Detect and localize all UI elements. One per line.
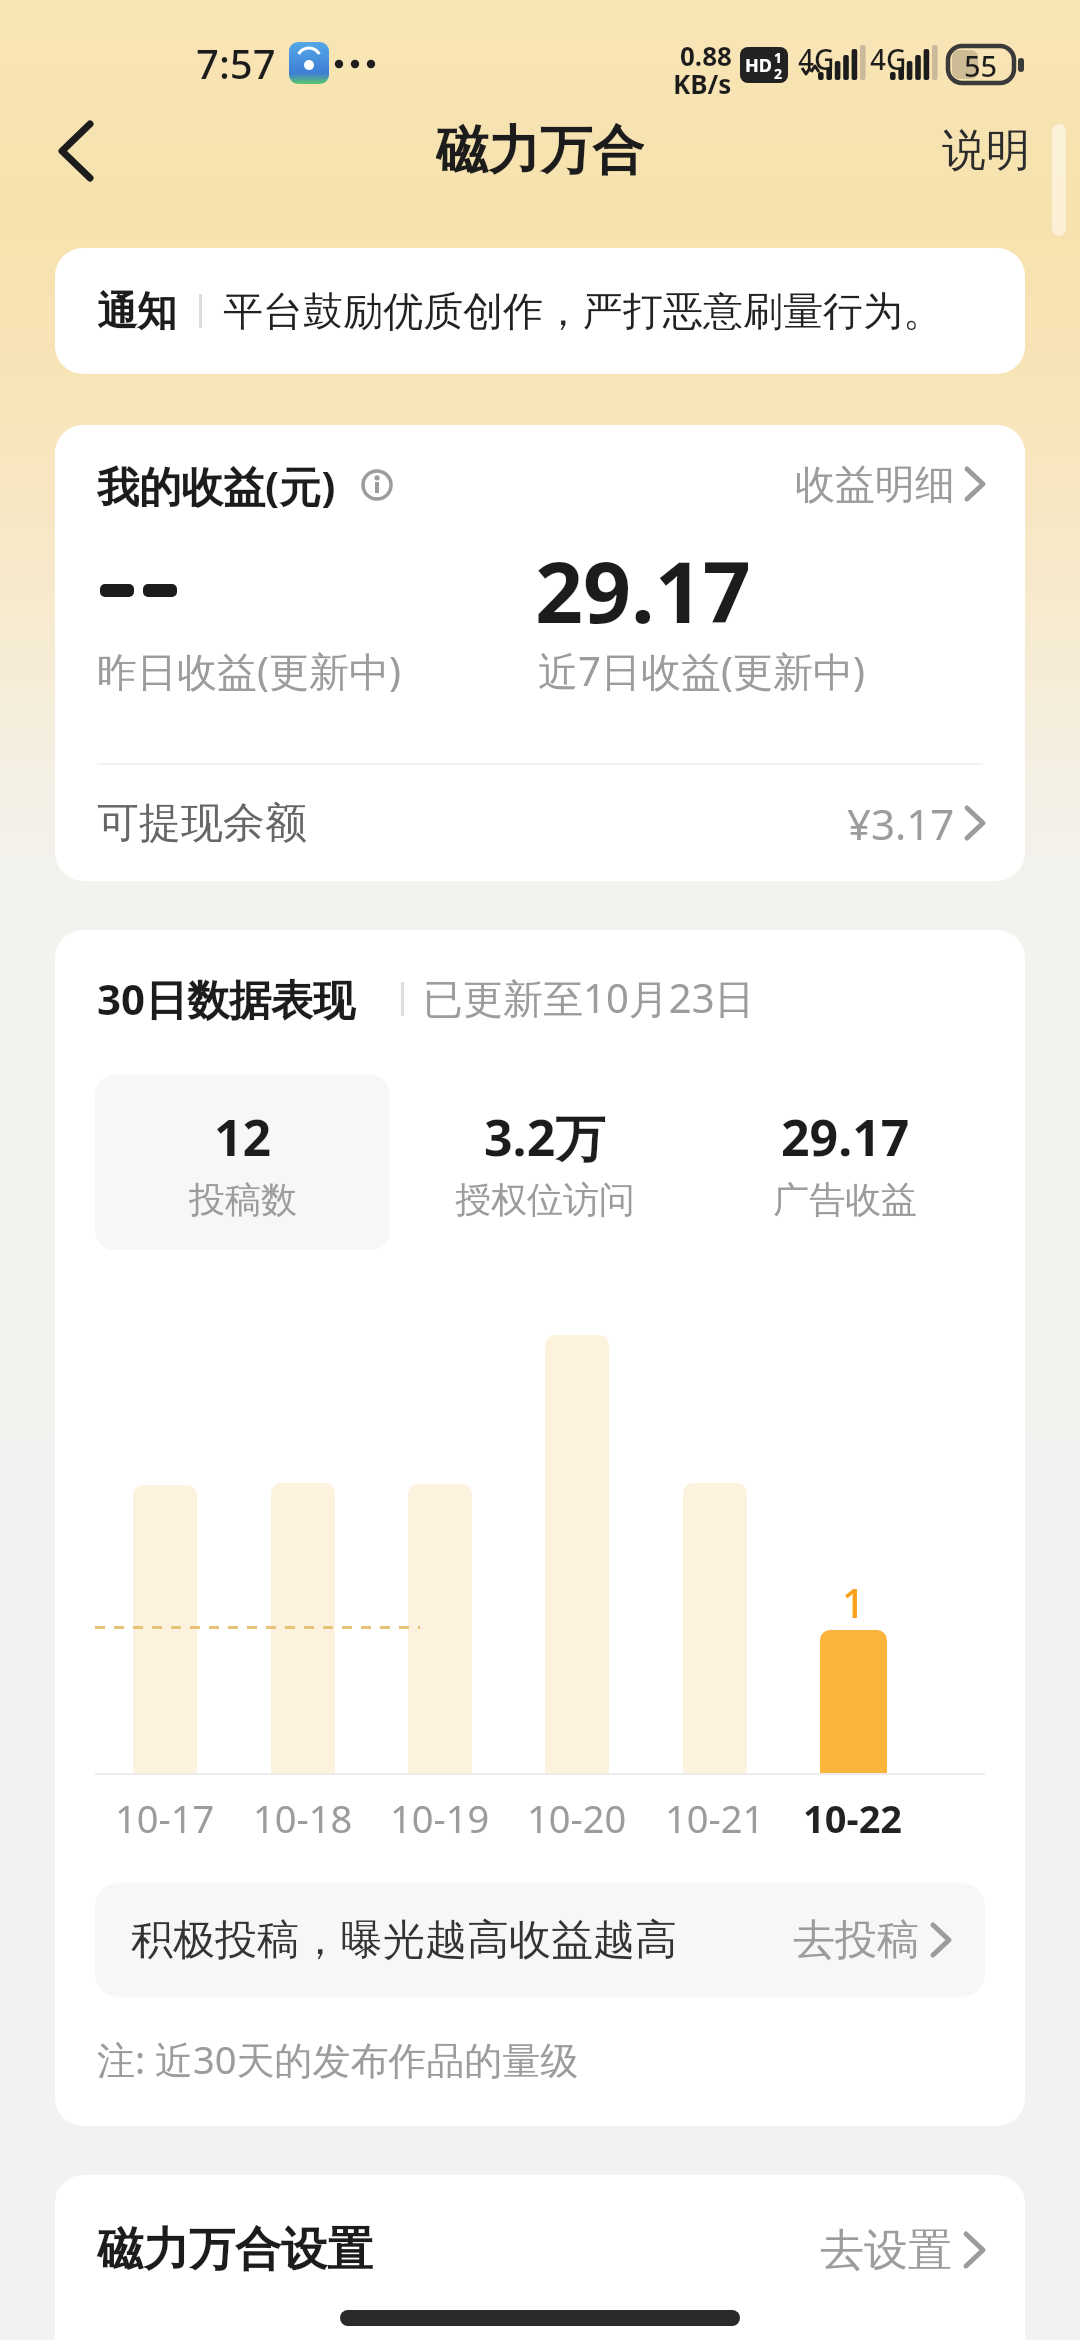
staticText: 昨日收益(更新中) bbox=[97, 643, 401, 697]
staticText: 4G bbox=[798, 40, 835, 74]
button[interactable]: 12 bbox=[95, 1075, 390, 1250]
staticText: 30日数据表现 bbox=[97, 970, 356, 1024]
staticText: 我的收益(元) bbox=[97, 457, 336, 511]
staticText: ¥3.17 bbox=[847, 795, 955, 852]
staticText: 10-21 bbox=[665, 1792, 765, 1844]
staticText: 近7日收益(更新中) bbox=[538, 643, 865, 697]
staticText: 1 bbox=[774, 48, 783, 65]
staticText: 55 bbox=[964, 46, 998, 83]
staticText: 去投稿 bbox=[793, 1914, 919, 1967]
staticText: 通知 bbox=[97, 286, 177, 336]
staticText: 平台鼓励优质创作，严打恶意刷量行为。 bbox=[223, 286, 943, 336]
staticText: 磁力万合设置 bbox=[97, 2221, 373, 2279]
staticText: 10-18 bbox=[253, 1792, 353, 1844]
staticText: 10-19 bbox=[390, 1792, 490, 1844]
button[interactable]: 可提现余额 bbox=[55, 765, 1025, 881]
staticText: 磁力万合 bbox=[436, 118, 644, 182]
staticText: 可提现余额 bbox=[97, 797, 307, 850]
staticText: HD bbox=[745, 53, 772, 78]
button[interactable]: 收益明细 bbox=[675, 457, 983, 511]
staticText: KB/s bbox=[673, 66, 732, 96]
button[interactable]: 通知 bbox=[55, 248, 1025, 374]
staticText: 29.17 bbox=[781, 1103, 910, 1171]
button[interactable]: 磁力万合设置 bbox=[55, 2175, 1025, 2340]
button[interactable]: 3.2万 bbox=[390, 1075, 700, 1250]
staticText: 广告收益 bbox=[773, 1177, 917, 1222]
staticText: 收益明细 bbox=[795, 459, 955, 509]
staticText: 2 bbox=[774, 64, 783, 81]
staticText: 说明 bbox=[942, 123, 1030, 178]
staticText: 12 bbox=[214, 1103, 272, 1171]
staticText: 3.2万 bbox=[484, 1103, 606, 1171]
staticText: 投稿数 bbox=[189, 1177, 297, 1222]
staticText: 去设置 bbox=[820, 2223, 952, 2278]
staticText: 积极投稿，曝光越高收益越高 bbox=[131, 1914, 677, 1967]
staticText: 注: 近30天的发布作品的量级 bbox=[97, 2033, 579, 2083]
staticText: 10-20 bbox=[527, 1792, 627, 1844]
staticText: 4G bbox=[870, 40, 907, 74]
staticText: 7:57 bbox=[196, 36, 276, 90]
staticText: 1 bbox=[842, 1575, 865, 1625]
staticText: 授权位访问 bbox=[455, 1177, 635, 1222]
button[interactable]: 积极投稿，曝光越高收益越高 bbox=[95, 1883, 985, 1997]
button[interactable]: 说明 bbox=[930, 118, 1030, 182]
button[interactable]: 29.17 bbox=[700, 1075, 990, 1250]
staticText: 0.88 bbox=[680, 38, 732, 68]
staticText: 29.17 bbox=[535, 533, 751, 647]
staticText: 已更新至10月23日 bbox=[423, 970, 755, 1024]
staticText: 10-17 bbox=[115, 1792, 215, 1844]
staticText: 10-22 bbox=[803, 1792, 903, 1844]
